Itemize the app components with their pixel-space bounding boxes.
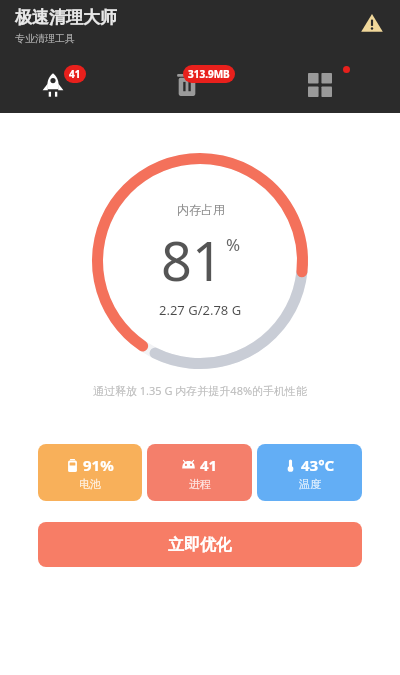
button[interactable]: 313.9MB	[155, 63, 247, 107]
button[interactable]: Apps	[288, 63, 380, 107]
staticText: 2.27 G/2.78 G	[159, 301, 242, 319]
button[interactable]: 立即优化	[38, 522, 362, 567]
staticText: 43°C	[301, 455, 335, 475]
staticText: 81	[161, 223, 223, 297]
staticText: 温度	[299, 477, 321, 491]
staticText: 极速清理大师	[15, 7, 117, 28]
staticText: 立即优化	[168, 535, 232, 555]
staticText: 专业清理工具	[15, 32, 75, 45]
button[interactable]: Warning	[360, 11, 384, 35]
staticText: 电池	[79, 477, 101, 491]
button[interactable]: 43°C	[257, 444, 362, 501]
staticText: 91%	[83, 455, 114, 475]
staticText: %	[226, 233, 241, 256]
staticText: 通过释放 1.35 G 内存并提升48%的手机性能	[0, 383, 400, 398]
button[interactable]: 41	[147, 444, 252, 501]
button[interactable]: 91%	[38, 444, 142, 501]
staticText: 进程	[189, 477, 211, 491]
staticText: 41	[200, 455, 218, 475]
staticText: 内存占用	[177, 202, 225, 217]
staticText: 313.9MB	[188, 67, 230, 81]
staticText: 41	[69, 67, 81, 81]
button[interactable]: 41	[21, 63, 113, 107]
